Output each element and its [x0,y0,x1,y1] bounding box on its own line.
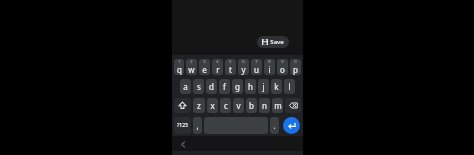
button[interactable]: , [193,117,202,134]
staticText: u [254,64,259,75]
button[interactable]: h [245,79,256,94]
staticText: o [280,64,285,75]
button[interactable]: z [193,98,205,113]
staticText: m [274,100,282,111]
button[interactable]: j [258,79,269,94]
button[interactable]: k [271,79,282,94]
staticText: 6 [242,59,245,64]
staticText: y [241,64,246,75]
staticText: 5 [229,59,232,64]
button[interactable]: 7 [251,59,262,75]
button[interactable]: d [206,79,217,94]
button[interactable]: x [207,98,218,113]
staticText: 2 [190,59,193,64]
button[interactable]: n [259,98,270,113]
button[interactable]: g [232,79,243,94]
staticText: b [249,100,254,111]
staticText: d [209,81,214,92]
staticText: e [202,64,207,75]
staticText: v [236,100,241,111]
staticText: a [183,81,188,92]
button[interactable]: b [246,98,257,113]
staticText: Save [270,38,284,46]
staticText: g [235,81,240,92]
button[interactable]: 0 [290,59,301,75]
staticText: z [197,100,201,111]
staticText: . [273,120,276,131]
button[interactable]: Shift [174,98,191,113]
button[interactable]: 4 [212,59,223,75]
staticText: l [288,81,291,92]
staticText: f [223,81,226,92]
staticText: 7 [255,59,258,64]
staticText: q [177,64,182,75]
staticText: 3 [203,59,206,64]
button[interactable]: f [219,79,230,94]
staticText: 4 [216,59,219,64]
staticText: j [262,81,265,92]
staticText: t [229,64,232,75]
staticText: ?123 [177,122,188,129]
staticText: w [188,64,195,75]
staticText: 1 [178,59,181,64]
button[interactable]: . [270,117,279,134]
staticText: , [196,120,199,131]
staticText: n [262,100,267,111]
button[interactable]: 1 [174,59,184,75]
button[interactable]: s [193,79,204,94]
button[interactable]: 6 [238,59,249,75]
staticText: 9 [281,59,284,64]
staticText: i [268,64,271,75]
button[interactable]: 8 [264,59,275,75]
button[interactable]: v [233,98,244,113]
button[interactable]: 2 [186,59,197,75]
button[interactable]: Backspace [285,98,301,113]
button[interactable]: m [272,98,283,113]
button[interactable]: a [180,79,191,94]
staticText: h [248,81,253,92]
staticText: 8 [268,59,271,64]
button[interactable]: c [220,98,231,113]
staticText: s [197,81,201,92]
button[interactable]: l [284,79,295,94]
staticText: r [216,64,220,75]
staticText: c [224,100,228,111]
staticText: p [293,64,298,75]
staticText: k [274,81,279,92]
button[interactable]: Enter [283,117,300,134]
staticText: x [210,100,215,111]
button[interactable]: 5 [225,59,236,75]
button[interactable]: 9 [277,59,288,75]
button[interactable]: 3 [199,59,210,75]
button[interactable]: Back [178,139,188,149]
button[interactable]: Save [257,36,289,48]
staticText: 0 [294,59,297,64]
button[interactable]: ?123 [174,117,191,134]
